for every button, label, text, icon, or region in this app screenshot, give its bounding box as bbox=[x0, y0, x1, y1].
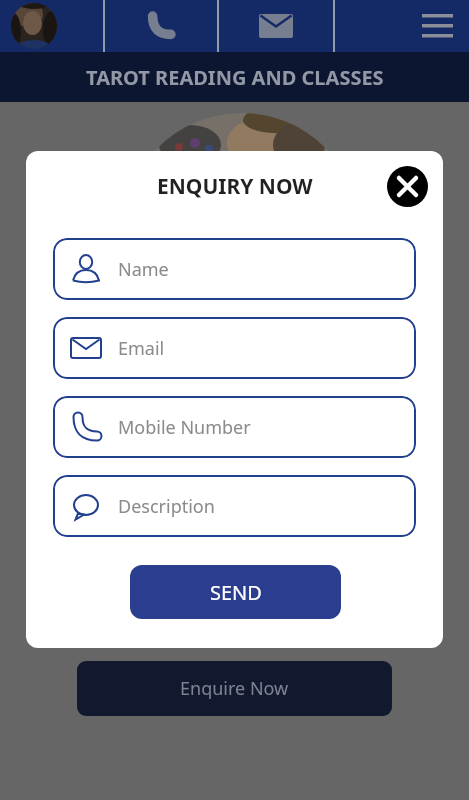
button[interactable] bbox=[387, 166, 428, 207]
button[interactable]: SEND bbox=[130, 565, 341, 619]
button[interactable]: Email bbox=[53, 317, 416, 379]
button[interactable] bbox=[105, 0, 217, 52]
button[interactable]: Mobile Number bbox=[53, 396, 416, 458]
staticText: Mobile Number bbox=[118, 415, 251, 440]
button[interactable] bbox=[11, 3, 57, 49]
staticText: SEND bbox=[210, 579, 262, 606]
staticText: Enquire Now bbox=[180, 676, 289, 701]
button[interactable]: Description bbox=[53, 475, 416, 537]
button[interactable]: Name bbox=[53, 238, 416, 300]
staticText: ENQUIRY NOW bbox=[157, 172, 313, 201]
staticText: Name bbox=[118, 257, 169, 282]
button[interactable] bbox=[335, 0, 469, 52]
staticText: Email bbox=[118, 336, 165, 361]
button[interactable]: Enquire Now bbox=[77, 661, 392, 716]
staticText: TAROT READING AND CLASSES bbox=[86, 64, 384, 91]
staticText: Description bbox=[118, 494, 215, 519]
button[interactable] bbox=[219, 0, 333, 52]
